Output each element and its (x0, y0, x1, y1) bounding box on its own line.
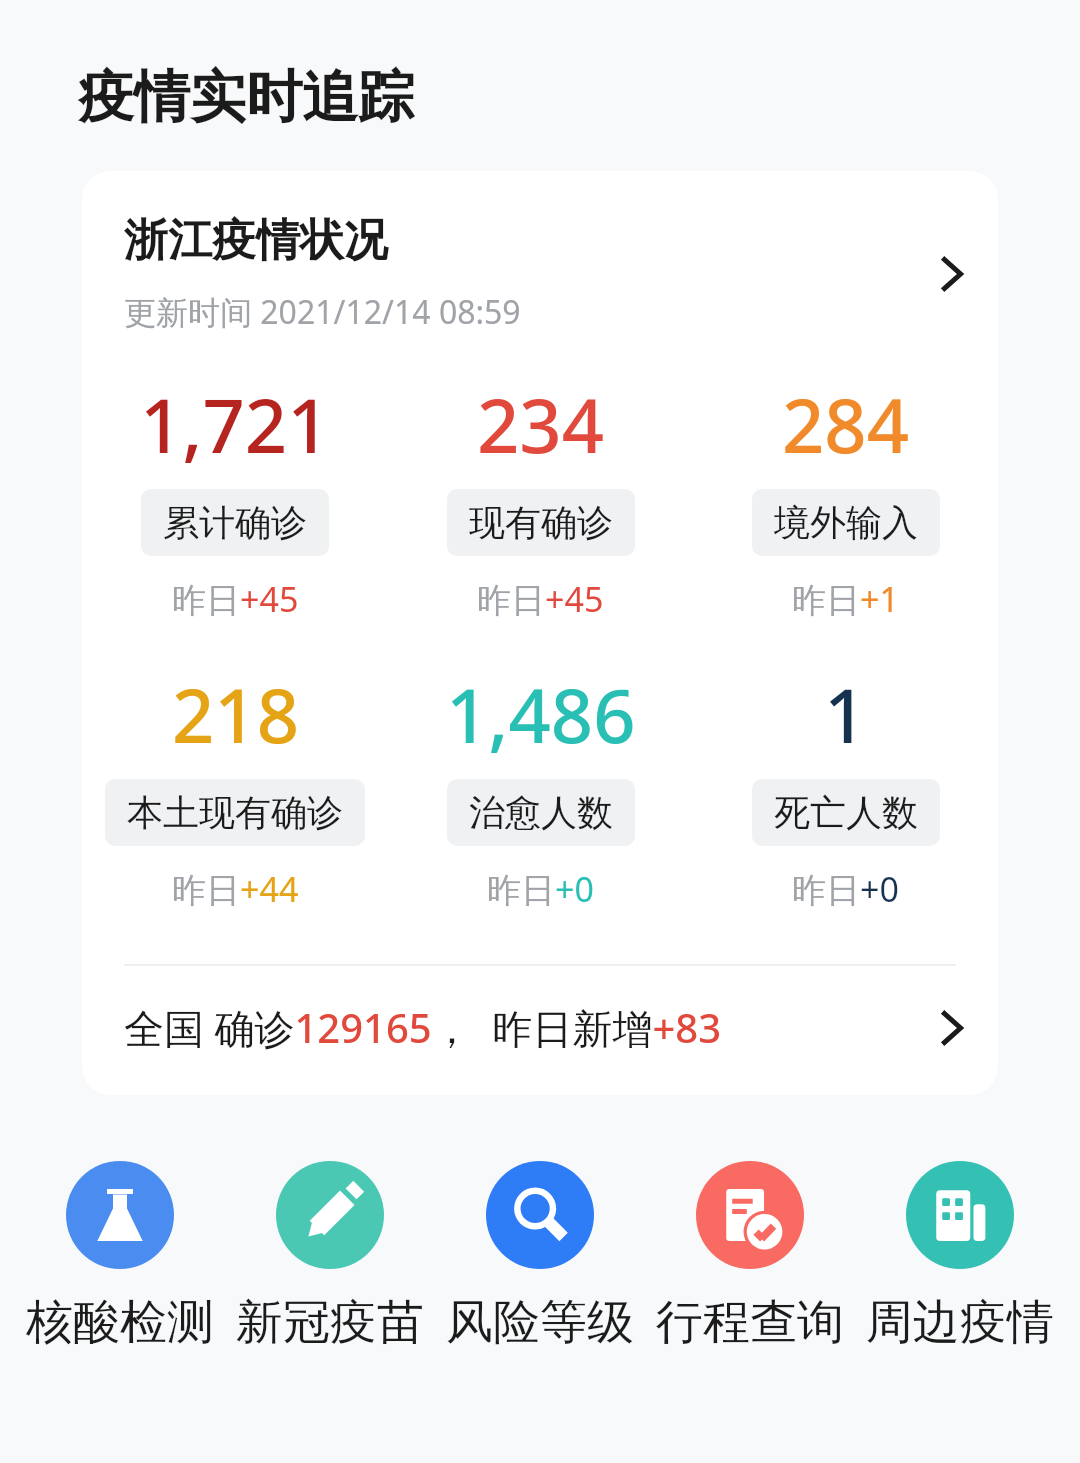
button[interactable]: 风险等级 (444, 1161, 636, 1352)
button[interactable]: 1 (693, 664, 998, 912)
staticText: 昨日+0 (487, 866, 594, 912)
staticText: 昨日+44 (172, 866, 299, 912)
staticText: 昨日+0 (792, 866, 899, 912)
staticText: 本土现有确诊 (127, 790, 343, 835)
staticText: 1 (824, 664, 867, 765)
button[interactable]: 218 (82, 664, 388, 912)
staticText: 境外输入 (774, 500, 918, 545)
staticText: 昨日+1 (792, 576, 899, 622)
button[interactable]: 234 (388, 374, 693, 622)
staticText: 218 (172, 664, 299, 765)
staticText: 1,721 (140, 374, 330, 475)
staticText: 累计确诊 (163, 500, 307, 545)
staticText: 风险等级 (446, 1293, 634, 1352)
staticText: 更新时间 2021/12/14 08:59 (124, 290, 521, 334)
staticText: 死亡人数 (774, 790, 918, 835)
staticText: 行程查询 (656, 1293, 844, 1352)
staticText: 昨日+45 (172, 576, 299, 622)
button[interactable]: 新冠疫苗 (234, 1161, 426, 1352)
staticText: 现有确诊 (469, 500, 613, 545)
button[interactable]: 核酸检测 (24, 1161, 216, 1352)
staticText: 全国 确诊129165， 昨日新增+83 (124, 1000, 941, 1055)
staticText: 浙江疫情状况 (124, 213, 388, 268)
staticText: 新冠疫苗 (236, 1293, 424, 1352)
staticText: 1,486 (446, 664, 636, 765)
staticText: 234 (477, 374, 604, 475)
button[interactable]: 1,486 (388, 664, 693, 912)
button[interactable]: 浙江疫情状况 (82, 213, 998, 334)
button[interactable]: 284 (693, 374, 998, 622)
staticText: 疫情实时追踪 (78, 62, 414, 133)
staticText: 核酸检测 (26, 1293, 214, 1352)
button[interactable]: 行程查询 (654, 1161, 846, 1352)
staticText: 284 (782, 374, 909, 475)
button[interactable]: 全国 确诊129165， 昨日新增+83 (82, 966, 998, 1089)
button[interactable]: 1,721 (82, 374, 388, 622)
staticText: 周边疫情 (866, 1293, 1054, 1352)
staticText: 治愈人数 (469, 790, 613, 835)
staticText: 昨日+45 (477, 576, 604, 622)
button[interactable]: 周边疫情 (864, 1161, 1056, 1352)
